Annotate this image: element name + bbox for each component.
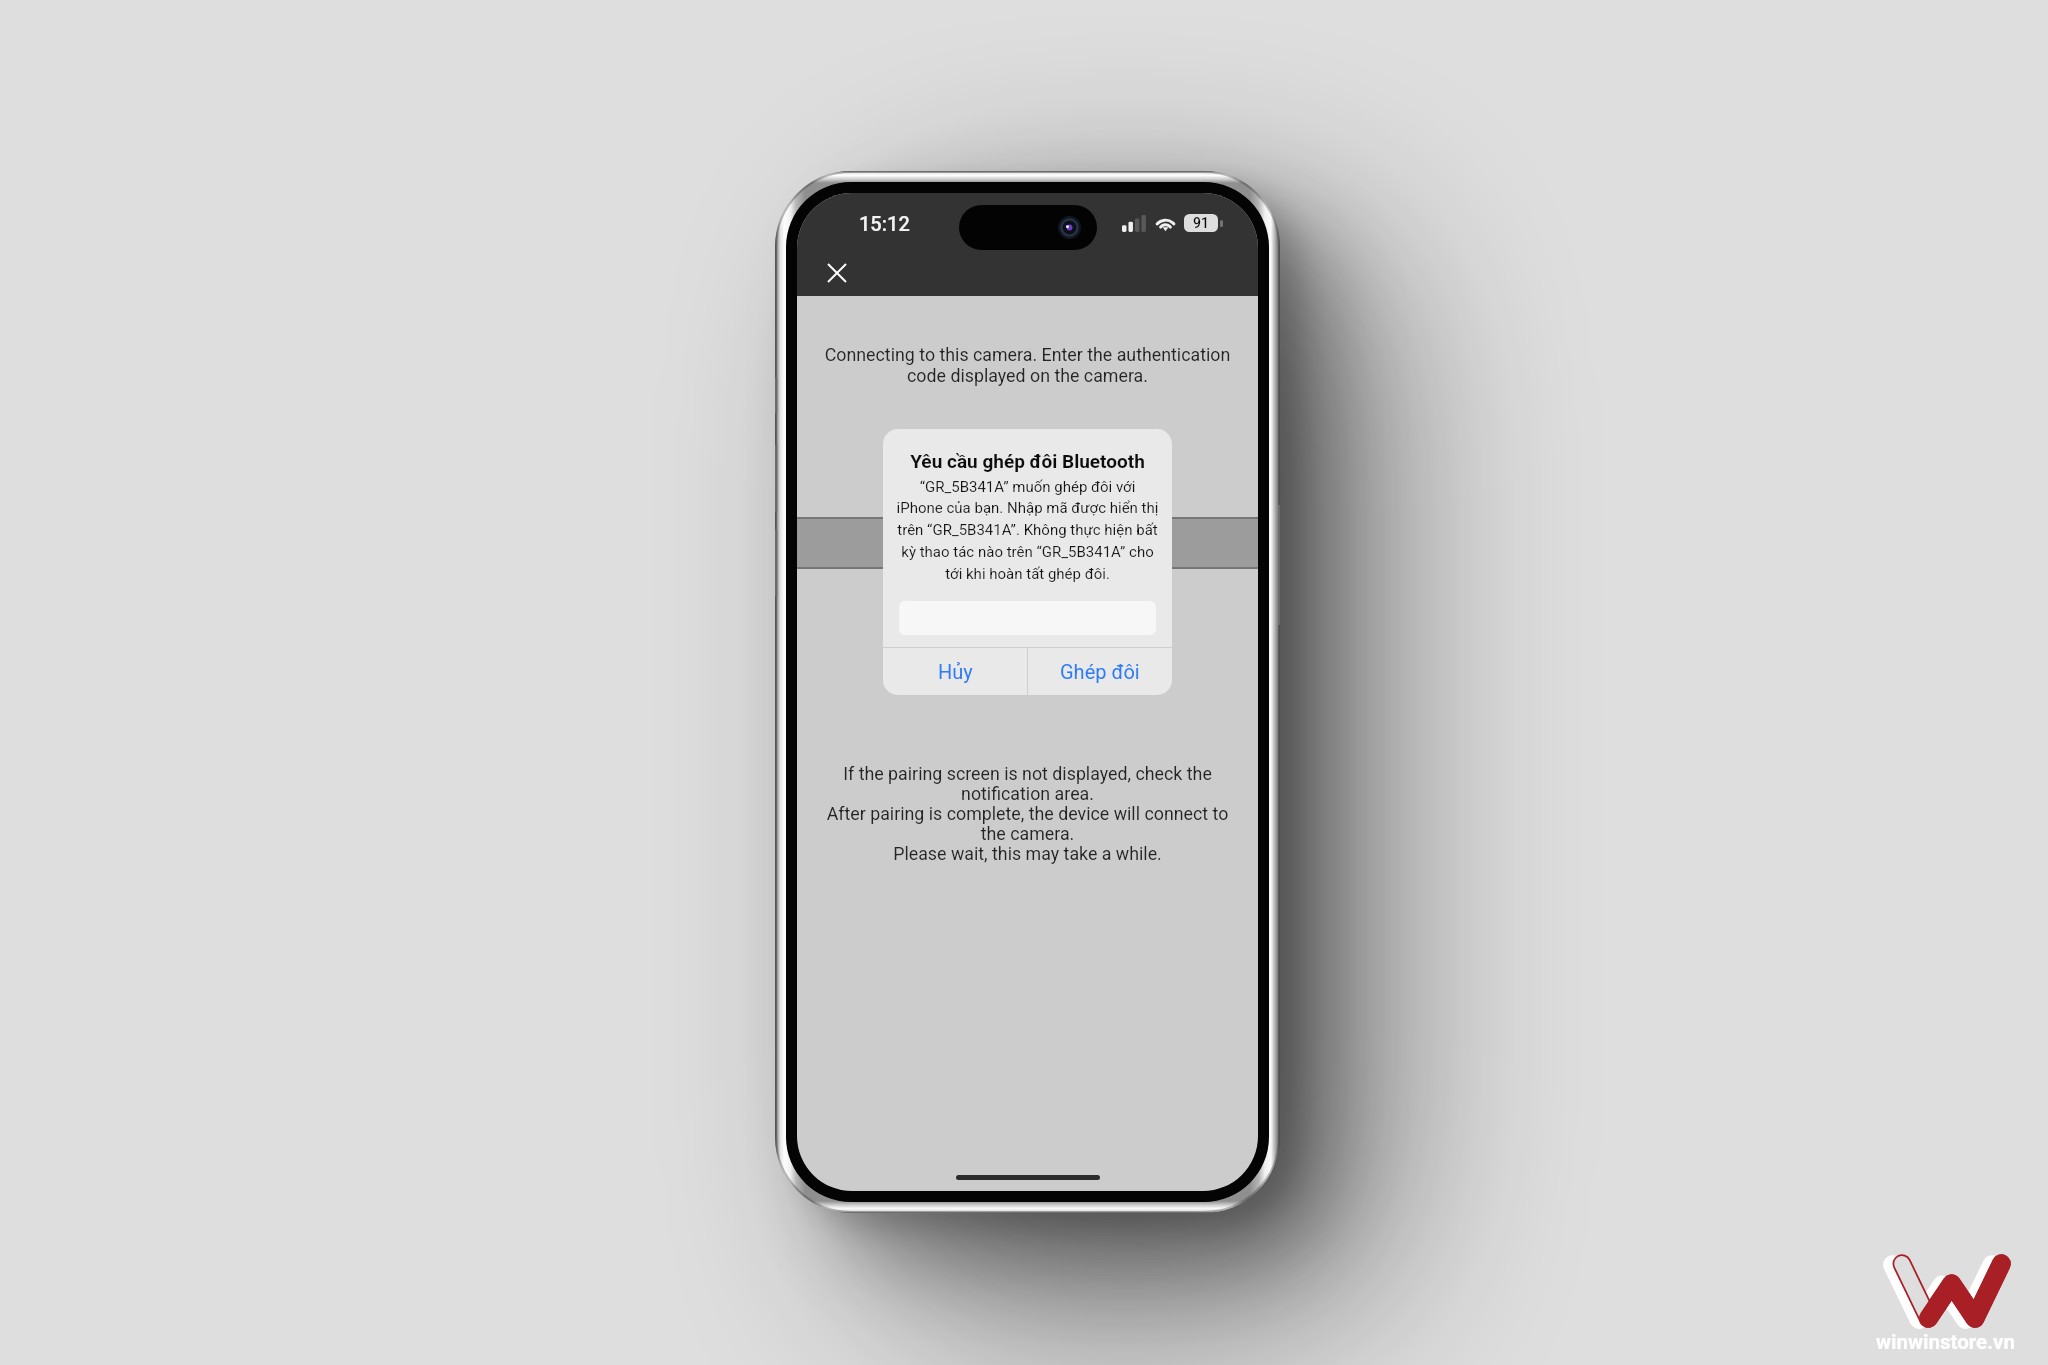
staticText: If the pairing screen is not displayed, … <box>797 763 1258 865</box>
staticText: 91 <box>1193 215 1209 231</box>
button[interactable]: Hủy <box>883 648 1027 695</box>
staticText: 15:12 <box>859 212 910 235</box>
staticText: Connecting to this camera. Enter the aut… <box>797 344 1258 387</box>
staticText: Yêu cầu ghép đôi Bluetooth <box>883 450 1172 472</box>
button[interactable]: Ghép đôi <box>1028 648 1172 695</box>
button[interactable]: Close <box>814 250 860 296</box>
staticText: winwinstore.vn <box>1876 1330 2015 1354</box>
staticText: “GR_5B341A” muốn ghép đôi với iPhone của… <box>883 478 1172 583</box>
staticText: Hủy <box>938 660 973 683</box>
staticText: Ghép đôi <box>1060 660 1140 683</box>
